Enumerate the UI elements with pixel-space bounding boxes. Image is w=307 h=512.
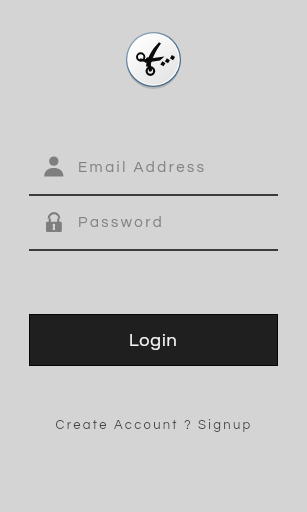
button[interactable]: Create Account ? Signup: [0, 410, 307, 438]
other: App logo: [126, 32, 181, 87]
button[interactable]: Login: [30, 315, 277, 365]
button[interactable]: [29, 202, 278, 250]
staticText: Login: [129, 331, 178, 350]
button[interactable]: [29, 146, 278, 195]
staticText: Email Address: [78, 160, 207, 175]
staticText: Create Account ? Signup: [55, 418, 253, 431]
staticText: Password: [78, 215, 165, 230]
